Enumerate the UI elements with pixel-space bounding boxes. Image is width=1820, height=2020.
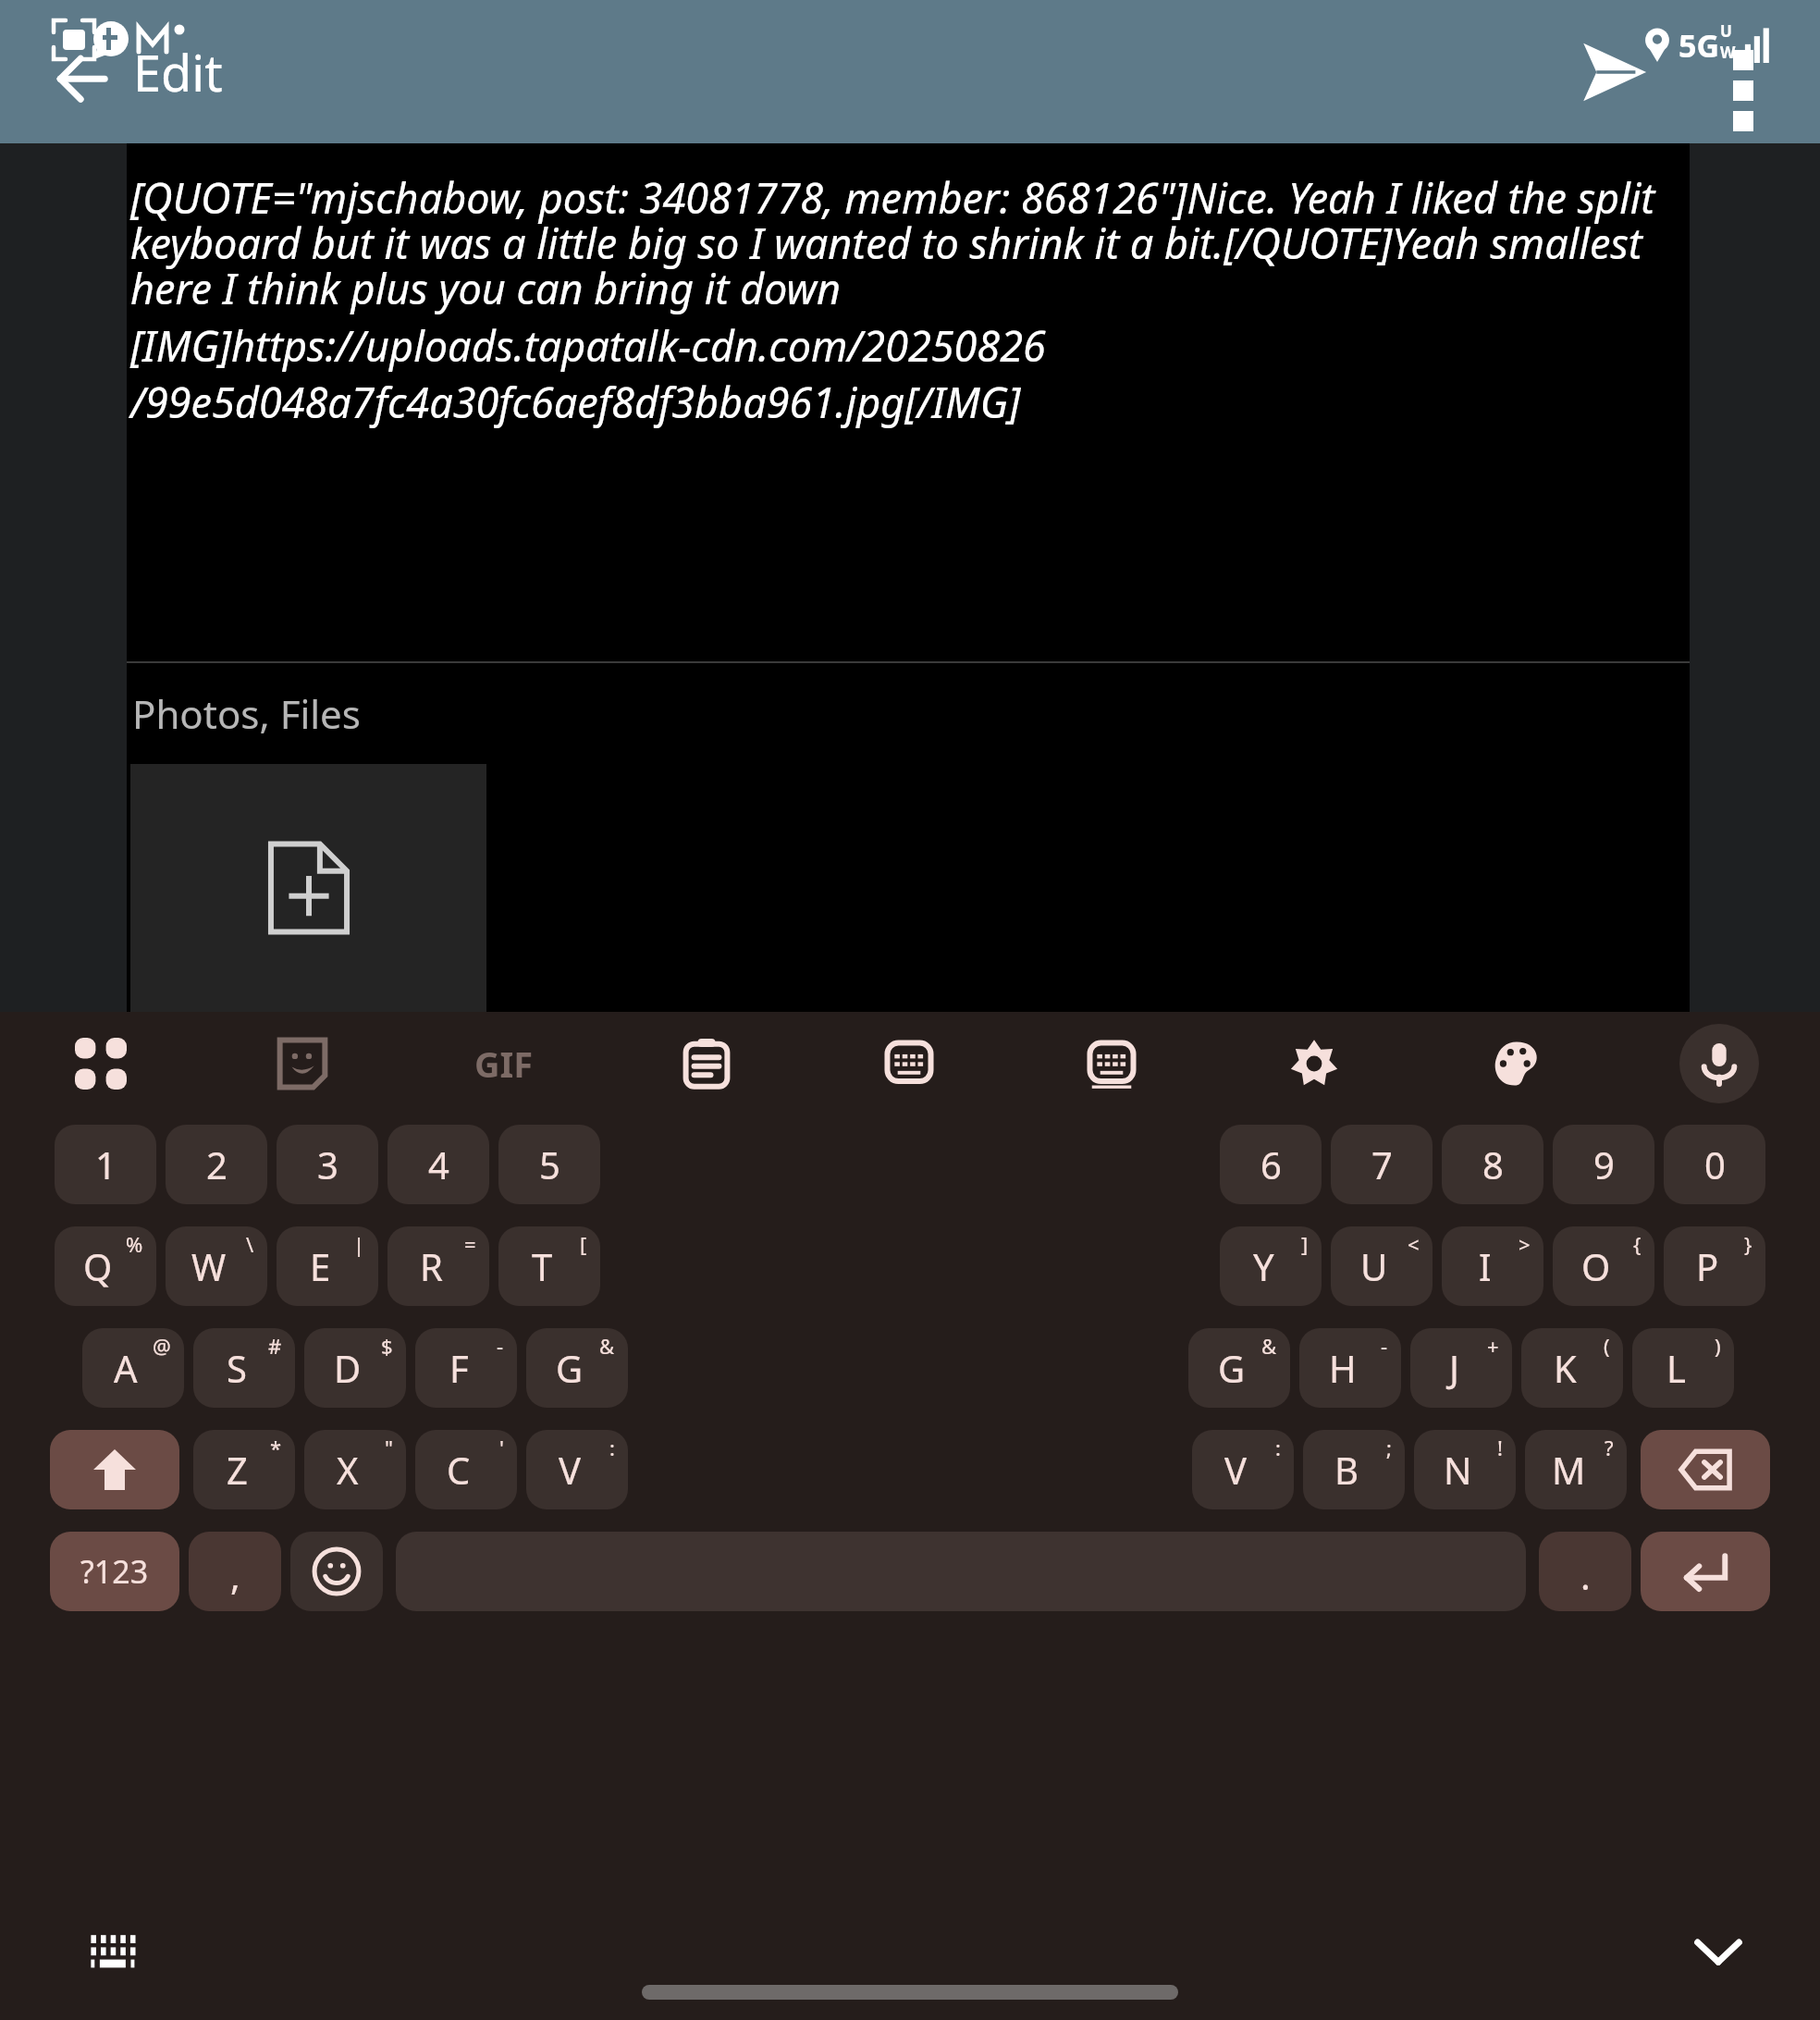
button[interactable]: ?123	[50, 1532, 179, 1611]
button[interactable]: M	[1525, 1430, 1627, 1509]
button[interactable]: Switch keyboard	[81, 1918, 146, 1983]
staticText: /99e5d048a7fc4a30fc6aef8df3bba961.jpg[/I…	[130, 374, 1021, 430]
staticText: [IMG]https://uploads.tapatalk-cdn.com/20…	[130, 317, 1046, 374]
button[interactable]: One-handed keyboard	[807, 1012, 1010, 1115]
button[interactable]: L	[1632, 1328, 1734, 1408]
button[interactable]: Hide keyboard	[1681, 1914, 1755, 1988]
button[interactable]: B	[1303, 1430, 1405, 1509]
button[interactable]: D	[304, 1328, 406, 1408]
staticText: >	[1519, 1230, 1531, 1258]
staticText: 8	[1482, 1139, 1504, 1189]
staticText: 4	[428, 1139, 449, 1189]
button[interactable]: Themes	[1415, 1012, 1617, 1115]
button[interactable]: Stickers	[202, 1012, 403, 1115]
staticText: GIF	[474, 1040, 534, 1088]
button[interactable]: E	[277, 1226, 378, 1306]
staticText: 3	[317, 1139, 338, 1189]
button[interactable]: Settings	[1212, 1012, 1415, 1115]
button[interactable]: Shift	[50, 1430, 179, 1509]
button[interactable]: 9	[1553, 1125, 1654, 1204]
button[interactable]: 4	[387, 1125, 489, 1204]
button[interactable]: A	[82, 1328, 184, 1408]
button[interactable]: U	[1331, 1226, 1433, 1306]
button[interactable]: Enter	[1641, 1532, 1770, 1611]
staticText: Edit	[133, 38, 223, 106]
button[interactable]: Q	[55, 1226, 156, 1306]
button[interactable]: G	[1188, 1328, 1290, 1408]
staticText: Q	[83, 1241, 113, 1291]
staticText: ?123	[80, 1550, 149, 1593]
staticText: =	[464, 1230, 476, 1258]
button[interactable]: Add attachment	[130, 764, 486, 1012]
button[interactable]: Apps	[0, 1012, 202, 1115]
button[interactable]: Send	[1563, 21, 1665, 123]
button[interactable]: X	[304, 1430, 406, 1509]
button[interactable]: GIF	[403, 1012, 605, 1115]
staticText: {	[1633, 1230, 1642, 1258]
staticText: "	[385, 1434, 393, 1461]
button[interactable]: O	[1553, 1226, 1654, 1306]
button[interactable]: More options	[1728, 44, 1759, 137]
button[interactable]: Z	[193, 1430, 295, 1509]
staticText: F	[449, 1343, 469, 1393]
button[interactable]: 6	[1220, 1125, 1322, 1204]
staticText: N	[1444, 1445, 1472, 1495]
staticText: M	[1552, 1445, 1586, 1495]
button[interactable]: Floating keyboard	[1010, 1012, 1212, 1115]
staticText: 2	[206, 1139, 227, 1189]
staticText: $	[381, 1332, 393, 1360]
staticText: Z	[227, 1445, 248, 1495]
staticText: A	[114, 1343, 138, 1393]
staticText: (	[1604, 1332, 1610, 1360]
button[interactable]: Emoji	[290, 1532, 383, 1611]
button[interactable]: C	[415, 1430, 517, 1509]
staticText: O	[1581, 1241, 1611, 1291]
button[interactable]: Y	[1220, 1226, 1322, 1306]
button[interactable]: 5	[498, 1125, 600, 1204]
staticText: V	[1224, 1445, 1247, 1495]
staticText: <	[1408, 1230, 1420, 1258]
button[interactable]: ,	[189, 1532, 281, 1611]
button[interactable]: 8	[1442, 1125, 1543, 1204]
button[interactable]: R	[387, 1226, 489, 1306]
button[interactable]: J	[1410, 1328, 1512, 1408]
staticText: 6	[1260, 1139, 1282, 1189]
button[interactable]: 1	[55, 1125, 156, 1204]
staticText: S	[227, 1343, 247, 1393]
staticText: ?	[1605, 1434, 1614, 1461]
button[interactable]: N	[1414, 1430, 1516, 1509]
button[interactable]: .	[1539, 1532, 1631, 1611]
staticText: L	[1666, 1343, 1686, 1393]
button[interactable]: Backspace	[1641, 1430, 1770, 1509]
button[interactable]: [QUOTE="mjschabow, post: 34081778, membe…	[127, 143, 1690, 661]
button[interactable]: V	[526, 1430, 628, 1509]
staticText: -	[497, 1332, 504, 1360]
button[interactable]: 2	[166, 1125, 267, 1204]
staticText: V	[559, 1445, 581, 1495]
staticText: R	[420, 1241, 443, 1291]
button[interactable]: T	[498, 1226, 600, 1306]
staticText: 0	[1704, 1139, 1726, 1189]
staticText: '	[499, 1434, 504, 1461]
button[interactable]: Clipboard	[605, 1012, 807, 1115]
button[interactable]: Back	[43, 33, 223, 111]
button[interactable]: K	[1521, 1328, 1623, 1408]
button[interactable]: Voice input	[1617, 1012, 1820, 1115]
button[interactable]: G	[526, 1328, 628, 1408]
staticText: U	[1360, 1241, 1388, 1291]
button[interactable]: P	[1664, 1226, 1765, 1306]
staticText: J	[1449, 1343, 1459, 1393]
button[interactable]: H	[1299, 1328, 1401, 1408]
button[interactable]: V	[1192, 1430, 1294, 1509]
button[interactable]: 7	[1331, 1125, 1433, 1204]
button[interactable]: S	[193, 1328, 295, 1408]
staticText: #	[268, 1332, 282, 1360]
other: Back	[43, 33, 120, 111]
button[interactable]: W	[166, 1226, 267, 1306]
button[interactable]: 3	[277, 1125, 378, 1204]
button[interactable]: I	[1442, 1226, 1543, 1306]
button[interactable]: 0	[1664, 1125, 1765, 1204]
staticText: D	[334, 1343, 362, 1393]
button[interactable]: F	[415, 1328, 517, 1408]
